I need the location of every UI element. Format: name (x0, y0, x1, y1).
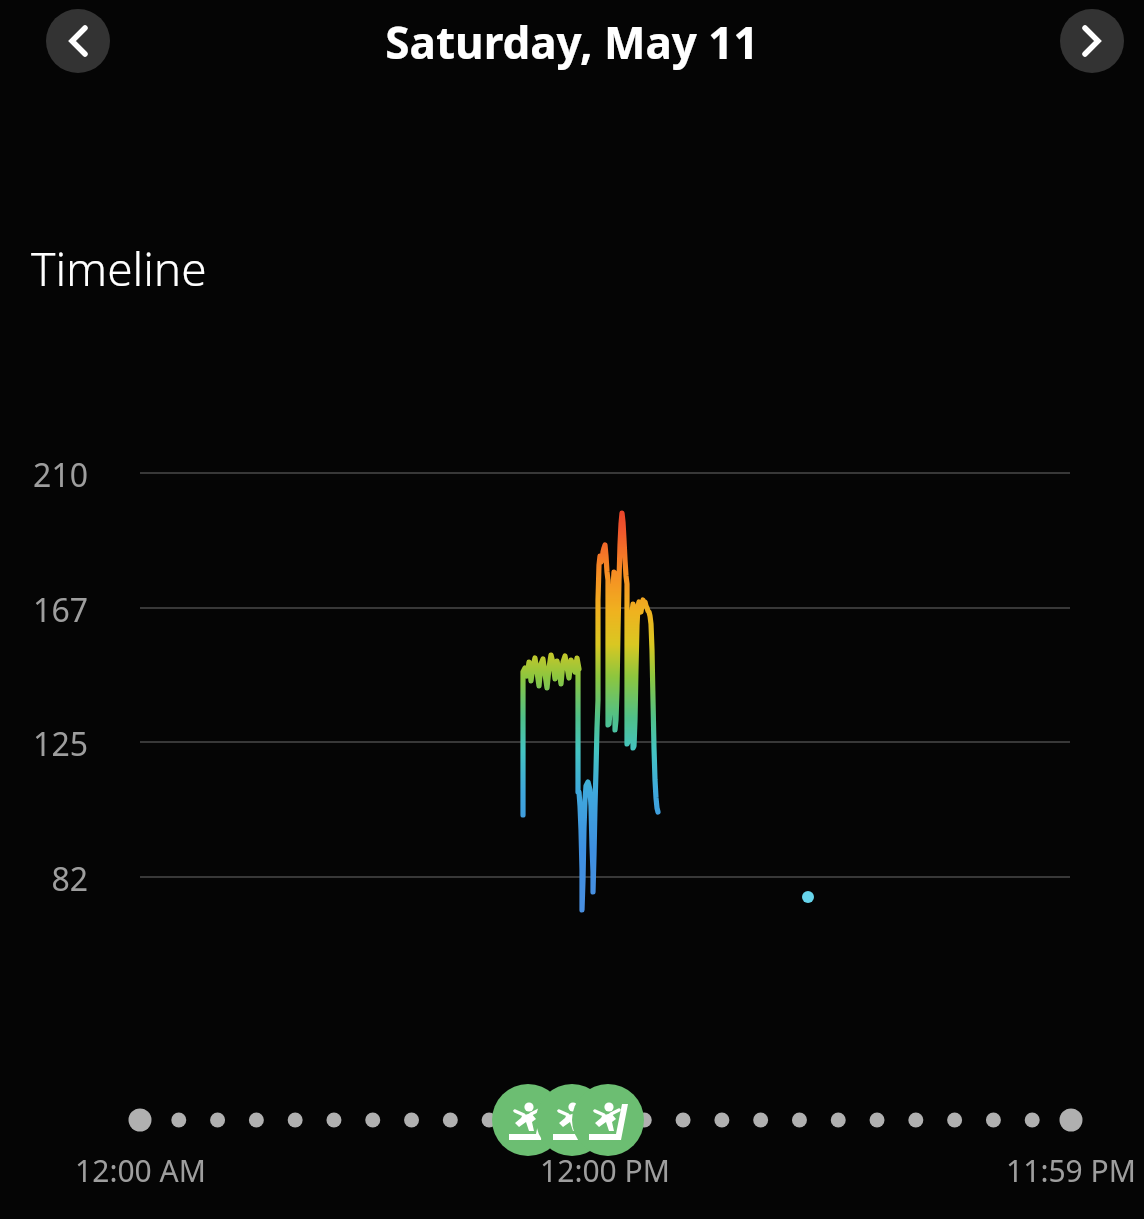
button[interactable]: Previous day (46, 9, 110, 73)
button[interactable]: Saturday, May 11 (250, 12, 894, 72)
button[interactable]: Treadmill run 2 (536, 1084, 608, 1156)
staticText: 167 (33, 588, 88, 628)
button[interactable]: Next day (1060, 9, 1124, 73)
staticText: 12:00 PM (540, 1150, 670, 1190)
staticText: 12:00 AM (75, 1150, 206, 1190)
staticText: 125 (33, 722, 88, 762)
staticText: Saturday, May 11 (385, 12, 759, 72)
button[interactable]: Treadmill run 1 (492, 1084, 564, 1156)
staticText: 11:59 PM (1006, 1150, 1136, 1190)
staticText: 210 (33, 453, 88, 493)
staticText: 82 (51, 857, 88, 897)
staticText: Timeline (31, 237, 207, 300)
button[interactable]: Treadmill run 3 (572, 1084, 644, 1156)
